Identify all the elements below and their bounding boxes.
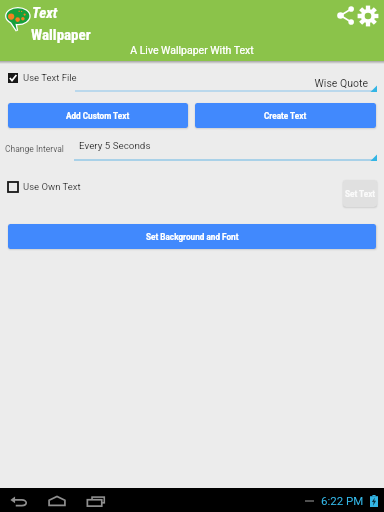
staticText: 6:22 PM: [321, 494, 364, 507]
staticText: Create Text: [264, 111, 307, 121]
staticText: Set Background and Font: [146, 232, 239, 242]
button[interactable]: Create Text: [195, 103, 376, 128]
staticText: Wise Quote: [75, 77, 368, 89]
staticText: A Live Wallpaper With Text: [0, 44, 384, 56]
button[interactable]: Use Own Text: [8, 181, 81, 192]
button[interactable]: Back: [10, 496, 28, 507]
staticText: Use Text File: [23, 72, 77, 83]
button[interactable]: Set Background and Font: [8, 224, 376, 249]
button[interactable]: Settings: [358, 6, 378, 26]
staticText: Text: [32, 4, 58, 22]
button[interactable]: Wise Quote: [75, 72, 377, 92]
button[interactable]: Home: [48, 496, 66, 506]
staticText: Add Custom Text: [66, 111, 130, 121]
staticText: Use Own Text: [23, 181, 81, 192]
staticText: Change Interval: [5, 144, 64, 154]
staticText: Wallpaper: [31, 26, 91, 44]
button[interactable]: Share: [337, 6, 356, 25]
button[interactable]: Every 5 Seconds: [74, 139, 377, 161]
button[interactable]: Use Text File: [8, 72, 77, 83]
staticText: Set Text: [345, 189, 376, 199]
staticText: Every 5 Seconds: [79, 140, 151, 151]
button[interactable]: Set Text: [343, 180, 377, 207]
button[interactable]: Recent apps: [87, 496, 105, 507]
button[interactable]: Add Custom Text: [8, 103, 188, 128]
